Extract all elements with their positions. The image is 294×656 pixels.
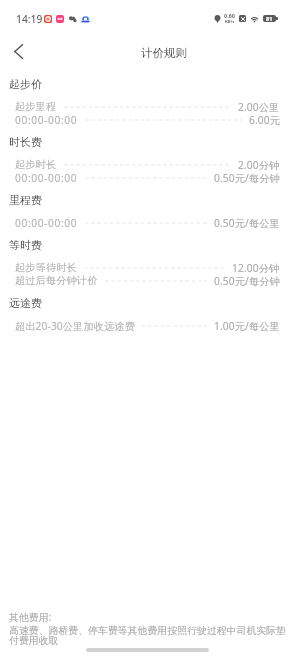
staticText: 0.50元/每分钟 xyxy=(214,274,280,287)
button[interactable]: 起步时长 xyxy=(0,158,294,171)
staticText: 起步里程 xyxy=(15,100,57,113)
staticText: 6.00元 xyxy=(249,113,280,126)
staticText: 81 xyxy=(266,15,273,22)
button[interactable]: 起步里程 xyxy=(0,100,294,113)
button[interactable]: 00:00-00:00 xyxy=(0,216,294,229)
staticText: 0.50元/每分钟 xyxy=(214,171,280,184)
staticText: 00:00-00:00 xyxy=(15,171,78,184)
staticText: 超出20-30公里加收远途费 xyxy=(15,319,135,332)
staticText: 时长费 xyxy=(9,135,42,149)
staticText: 起步等待时长 xyxy=(15,261,77,274)
staticText: 2.00分钟 xyxy=(238,158,280,171)
staticText: 14:19 xyxy=(16,12,43,26)
staticText: 0.60 xyxy=(224,12,235,19)
staticText: 等时费 xyxy=(9,238,42,252)
button[interactable]: 起步等待时长 xyxy=(0,261,294,274)
staticText: 高速费、路桥费、停车费等其他费用按照行驶过程中司机实际垫付费用收取 xyxy=(9,624,286,647)
button[interactable]: Back xyxy=(0,35,34,68)
button[interactable]: 超出20-30公里加收远途费 xyxy=(0,319,294,332)
staticText: 00:00-00:00 xyxy=(15,113,78,126)
staticText: KB/s xyxy=(225,19,235,25)
staticText: 起步价 xyxy=(9,77,42,91)
staticText: 1.00元/每公里 xyxy=(214,319,280,332)
staticText: 起步时长 xyxy=(15,158,57,171)
staticText: 00:00-00:00 xyxy=(15,216,78,229)
staticText: 里程费 xyxy=(9,193,42,207)
button[interactable]: 超过后每分钟计价 xyxy=(0,274,294,287)
staticText: 远途费 xyxy=(9,296,42,310)
staticText: 其他费用: xyxy=(9,610,52,624)
staticText: 12.00分钟 xyxy=(232,261,280,274)
button[interactable]: 00:00-00:00 xyxy=(0,113,294,126)
button[interactable]: 00:00-00:00 xyxy=(0,171,294,184)
staticText: 超过后每分钟计价 xyxy=(15,274,98,287)
staticText: 计价规则 xyxy=(141,46,187,60)
staticText: 2.00公里 xyxy=(238,100,280,113)
staticText: 0.50元/每公里 xyxy=(214,216,280,229)
